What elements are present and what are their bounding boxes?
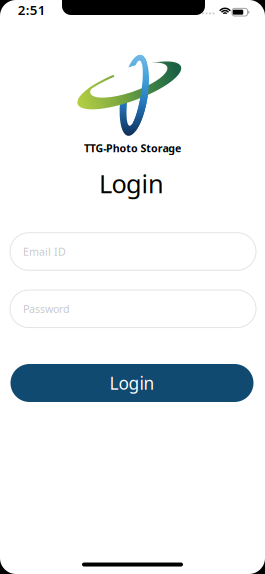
button[interactable]: Password <box>10 290 256 328</box>
staticText: Login <box>109 371 154 394</box>
staticText: Password <box>23 302 70 316</box>
staticText: TTG-Photo Storage <box>84 141 181 155</box>
button[interactable]: Email ID <box>10 233 256 270</box>
staticText: Email ID <box>23 244 66 259</box>
staticText: Login <box>99 167 164 200</box>
button[interactable]: Login <box>10 364 253 402</box>
staticText: 2:51 <box>18 1 46 19</box>
